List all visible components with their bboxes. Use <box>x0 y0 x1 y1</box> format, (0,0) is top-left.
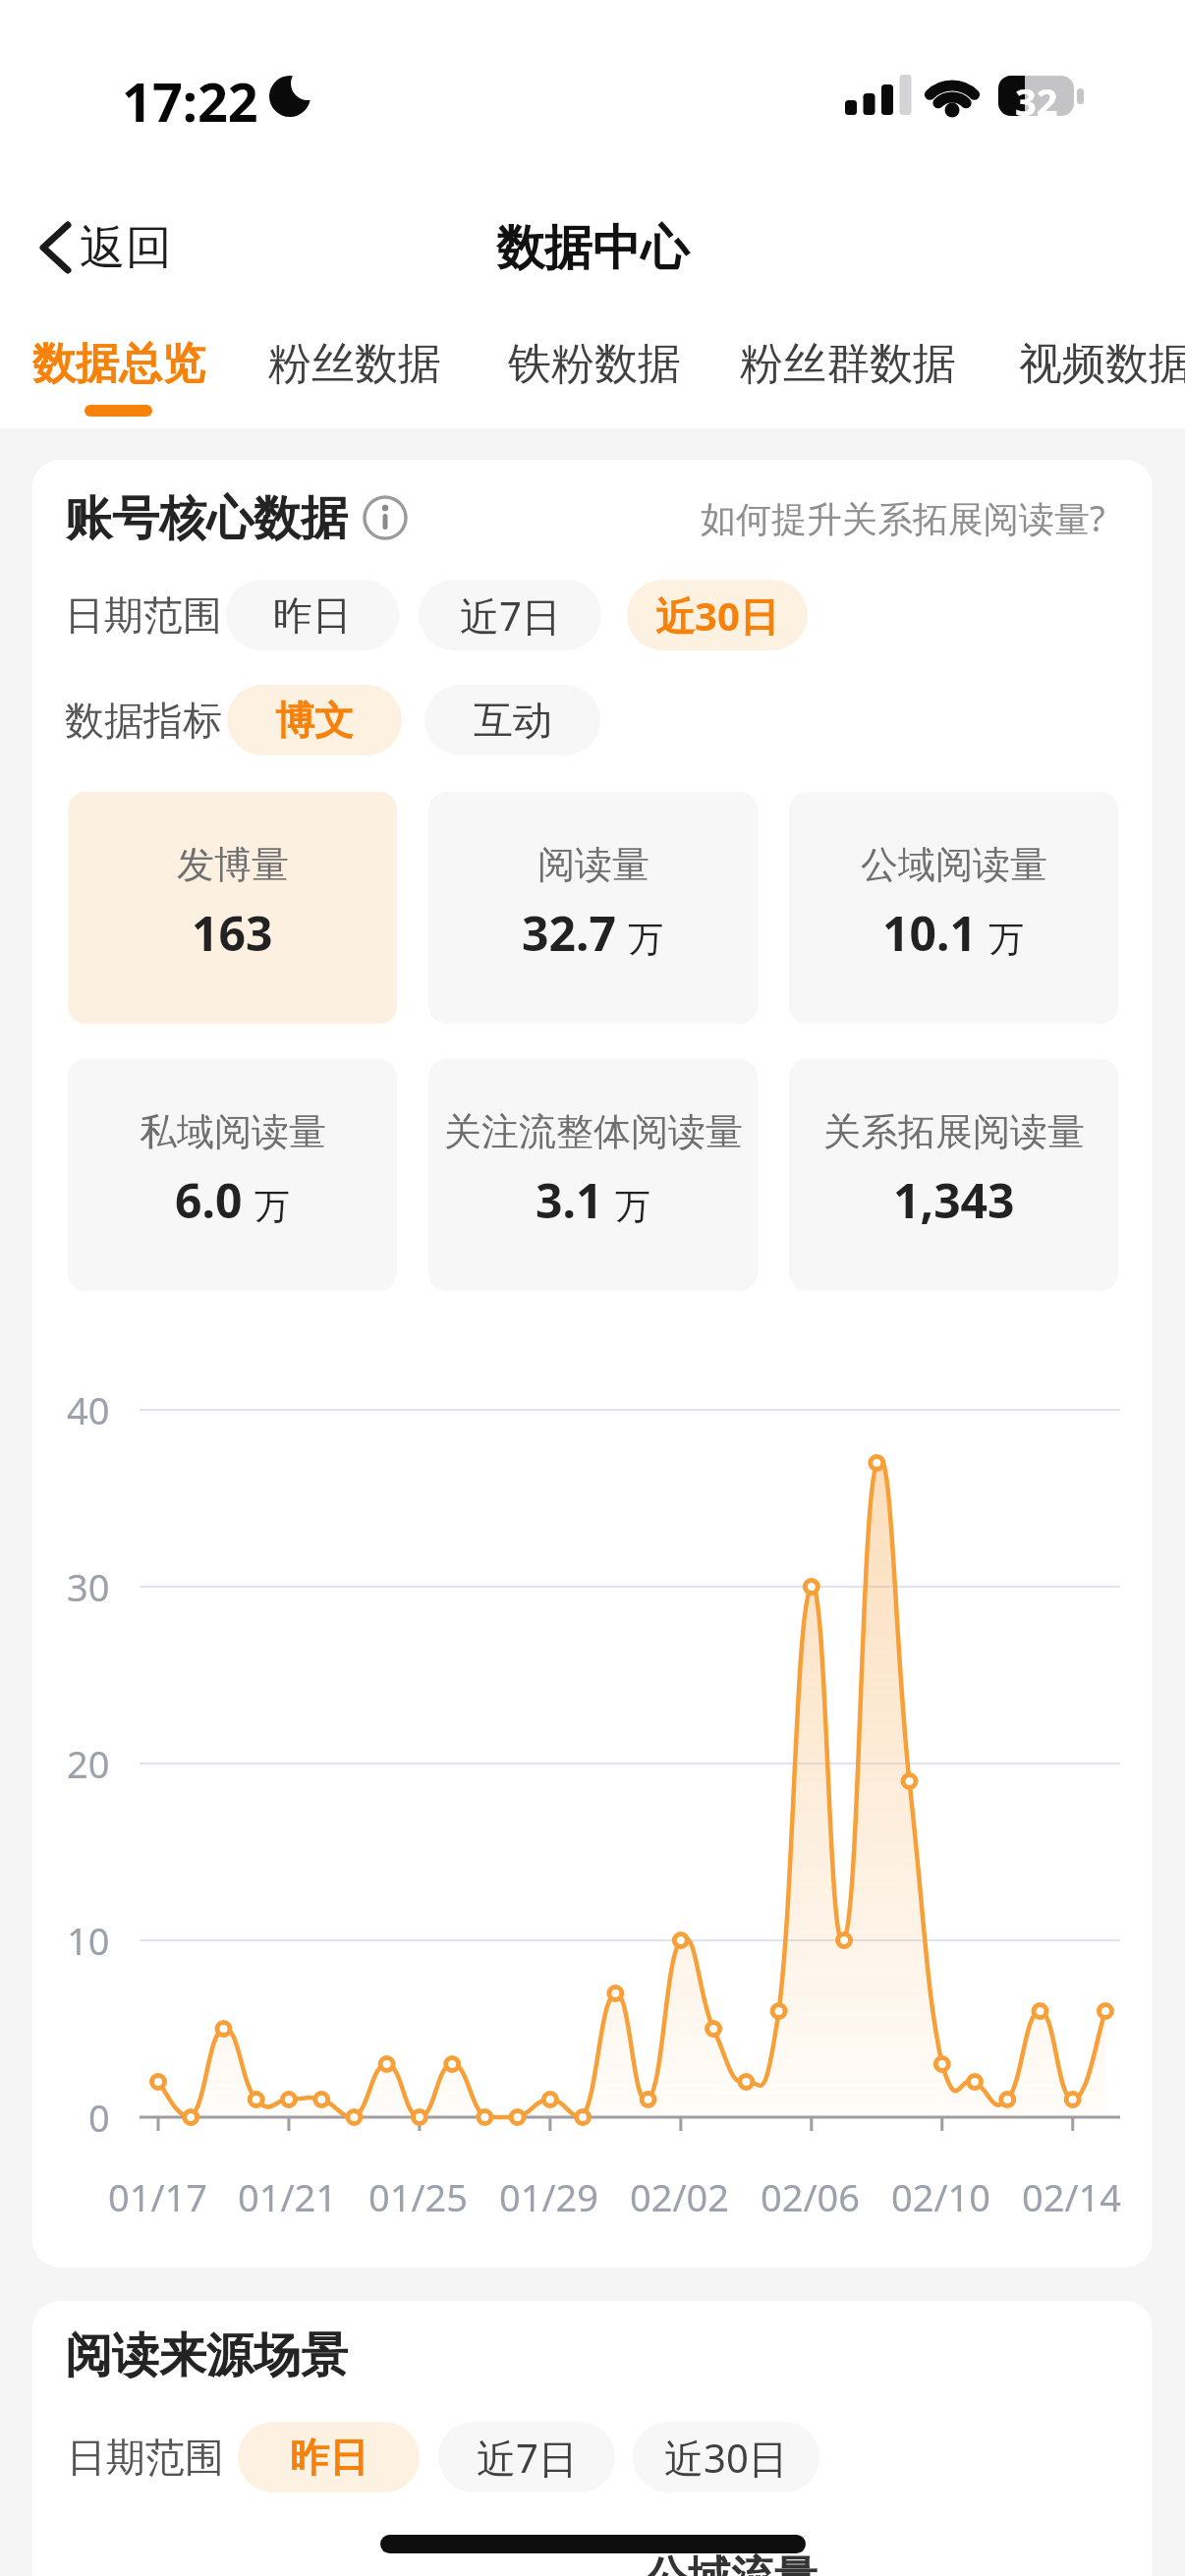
staticText: 视频数据 <box>1019 337 1185 391</box>
staticText: 01/25 <box>368 2171 469 2222</box>
button[interactable]: 公域阅读量 <box>789 792 1118 1024</box>
staticText: 日期范围 <box>65 590 222 640</box>
staticText: 发博量 <box>177 841 289 888</box>
staticText: 公域阅读量 <box>861 841 1047 888</box>
staticText: 02/14 <box>1022 2171 1122 2222</box>
staticText: 昨日 <box>273 590 352 640</box>
staticText: 关注流整体阅读量 <box>444 1108 743 1155</box>
staticText: 返回 <box>80 219 172 277</box>
staticText: 10.1 万 <box>882 901 1025 965</box>
staticText: 粉丝数据 <box>268 337 441 391</box>
staticText: 0 <box>88 2092 110 2143</box>
staticText: 1,343 <box>893 1168 1015 1232</box>
button[interactable]: 返回 <box>29 211 172 285</box>
staticText: 近30日 <box>655 588 779 643</box>
button[interactable]: 关系拓展阅读量 <box>789 1059 1118 1291</box>
staticText: 阅读量 <box>537 841 649 888</box>
staticText: 铁粉数据 <box>508 337 681 391</box>
button[interactable]: 昨日 <box>238 2422 420 2492</box>
button[interactable]: 近30日 <box>627 580 808 650</box>
staticText: 关系拓展阅读量 <box>823 1108 1085 1155</box>
staticText: 01/29 <box>499 2171 599 2222</box>
staticText: 数据总览 <box>32 337 205 391</box>
button[interactable]: 发博量 <box>68 792 397 1024</box>
staticText: 32 <box>1015 76 1058 116</box>
button[interactable]: 私域阅读量 <box>68 1059 397 1291</box>
staticText: 02/10 <box>891 2171 991 2222</box>
button[interactable]: 互动 <box>424 685 600 756</box>
staticText: 互动 <box>474 696 552 745</box>
staticText: 日期范围 <box>67 2433 224 2482</box>
button[interactable]: 近7日 <box>419 580 601 650</box>
staticText: 10 <box>67 1915 110 1966</box>
button[interactable]: 博文 <box>227 685 402 756</box>
staticText: 20 <box>67 1738 110 1789</box>
staticText: 账号核心数据 <box>65 489 348 546</box>
button[interactable]: 近30日 <box>633 2422 819 2492</box>
button[interactable]: 近7日 <box>438 2422 615 2492</box>
staticText: 数据中心 <box>496 218 689 279</box>
button[interactable]: 数据总览 <box>32 334 205 393</box>
button[interactable]: 昨日 <box>226 580 399 650</box>
staticText: 近7日 <box>460 588 561 643</box>
button[interactable]: 如何提升关系拓展阅读量? <box>649 494 1105 540</box>
staticText: 163 <box>192 901 273 965</box>
staticText: 如何提升关系拓展阅读量? <box>701 494 1105 540</box>
staticText: 01/17 <box>108 2171 208 2222</box>
staticText: 阅读来源场景 <box>65 2326 348 2383</box>
staticText: 40 <box>67 1384 110 1435</box>
button[interactable]: 关注流整体阅读量 <box>428 1059 758 1291</box>
staticText: 私域阅读量 <box>140 1108 326 1155</box>
staticText: 近30日 <box>664 2431 788 2485</box>
button[interactable]: 铁粉数据 <box>507 334 682 393</box>
staticText: 粉丝群数据 <box>740 337 956 391</box>
staticText: 01/21 <box>238 2171 338 2222</box>
staticText: 近7日 <box>477 2431 578 2485</box>
button[interactable]: 粉丝数据 <box>267 334 442 393</box>
button[interactable]: 粉丝群数据 <box>739 334 957 393</box>
staticText: 昨日 <box>290 2433 368 2482</box>
staticText: 博文 <box>275 696 354 745</box>
staticText: 02/06 <box>761 2171 861 2222</box>
button[interactable]: 视频数据 <box>1018 334 1185 393</box>
button[interactable]: 阅读量 <box>428 792 758 1024</box>
staticText: 30 <box>67 1561 110 1612</box>
staticText: 6.0 万 <box>175 1168 290 1232</box>
staticText: 3.1 万 <box>536 1168 650 1232</box>
staticText: 数据指标 <box>65 696 222 745</box>
staticText: 公域流量 <box>645 2550 818 2576</box>
staticText: 17:22 <box>122 65 258 126</box>
staticText: 02/02 <box>630 2171 730 2222</box>
staticText: 32.7 万 <box>522 901 664 965</box>
